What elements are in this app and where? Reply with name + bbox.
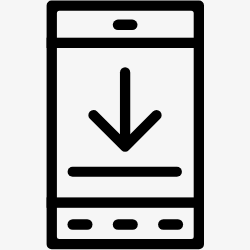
button[interactable]: Download to phone xyxy=(0,0,250,250)
